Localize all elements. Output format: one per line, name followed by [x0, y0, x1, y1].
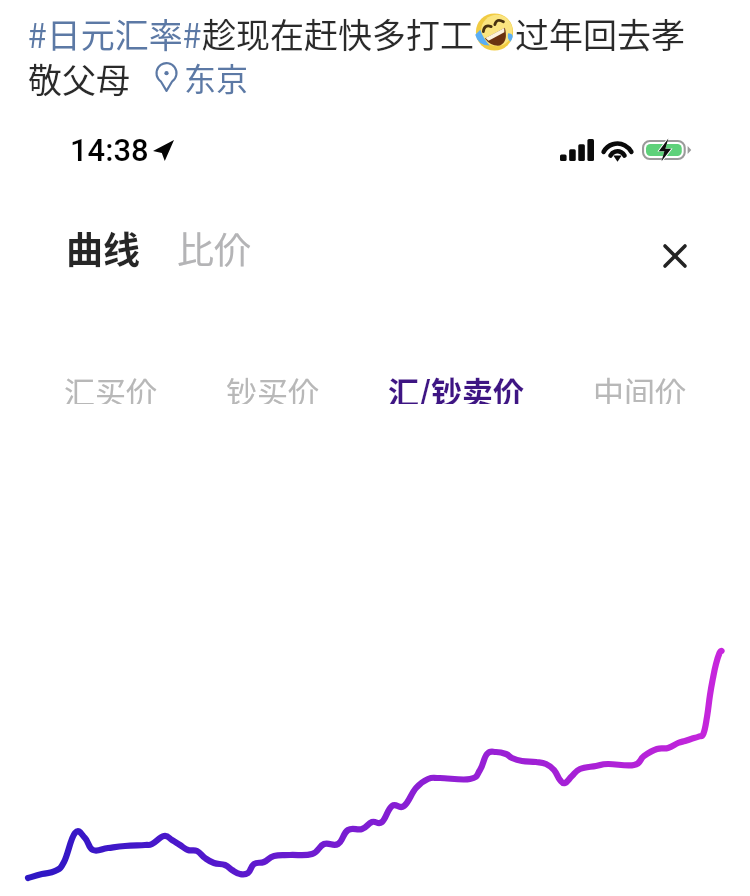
staticText: 中间价 [593, 368, 686, 404]
staticText: 过年回去孝 [515, 9, 685, 54]
button[interactable]: #日元汇率# [28, 9, 202, 54]
staticText: 趁现在赶快多打工 [202, 9, 474, 54]
staticText: 汇/钞卖价 [388, 368, 524, 404]
staticText: 敬父母 [28, 54, 130, 99]
button[interactable]: 钞买价 [218, 356, 327, 416]
button[interactable]: 中间价 [585, 356, 694, 416]
button[interactable]: Location 东京 [154, 54, 249, 99]
staticText: #日元汇率# [28, 9, 202, 54]
button[interactable]: 汇/钞卖价 [380, 356, 532, 416]
staticText: 比价 [177, 221, 251, 271]
staticText: 钞买价 [226, 368, 319, 404]
button[interactable]: 比价 [169, 211, 259, 281]
staticText: 汇买价 [64, 368, 157, 404]
staticText: 14:38 [70, 132, 149, 168]
button[interactable]: 曲线 [58, 211, 148, 281]
button[interactable]: Close [651, 232, 699, 280]
staticText: 东京 [184, 54, 249, 99]
staticText: 曲线 [66, 221, 140, 271]
button[interactable]: 汇买价 [56, 356, 165, 416]
